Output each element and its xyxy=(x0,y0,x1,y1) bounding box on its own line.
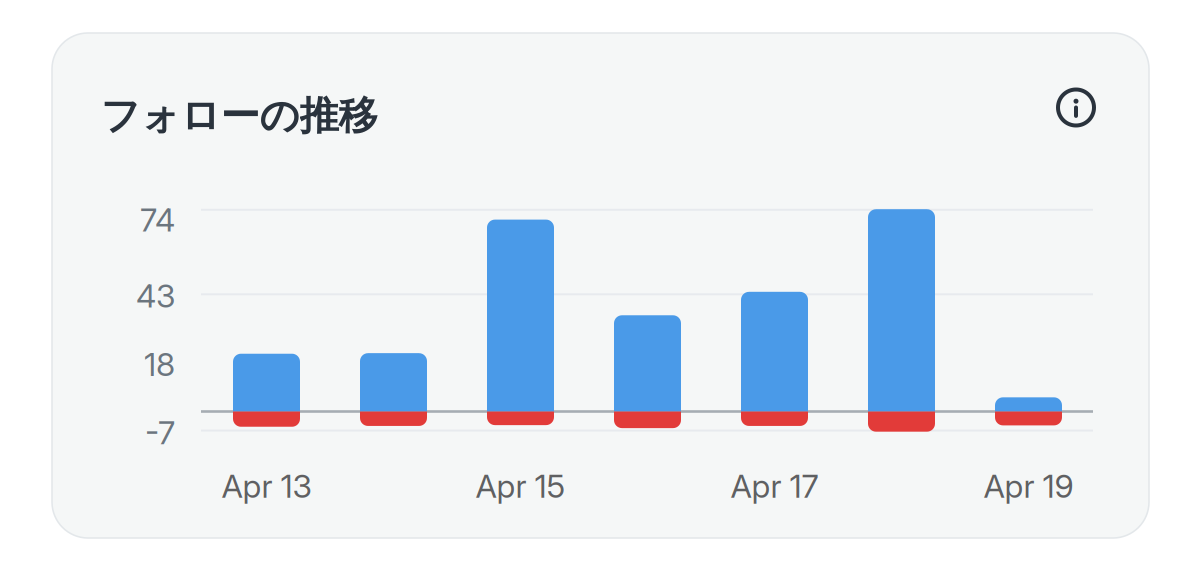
button[interactable]: このグラフについて xyxy=(1048,79,1104,135)
staticText: Apr 13 xyxy=(221,467,311,505)
staticText: 43 xyxy=(136,276,175,315)
staticText: Apr 17 xyxy=(730,467,818,505)
staticText: フォローの推移 xyxy=(100,91,377,141)
staticText: -7 xyxy=(145,413,175,452)
staticText: Apr 19 xyxy=(983,467,1073,505)
staticText: Apr 15 xyxy=(475,467,565,505)
staticText: 18 xyxy=(144,345,175,384)
staticText: 74 xyxy=(140,200,175,239)
